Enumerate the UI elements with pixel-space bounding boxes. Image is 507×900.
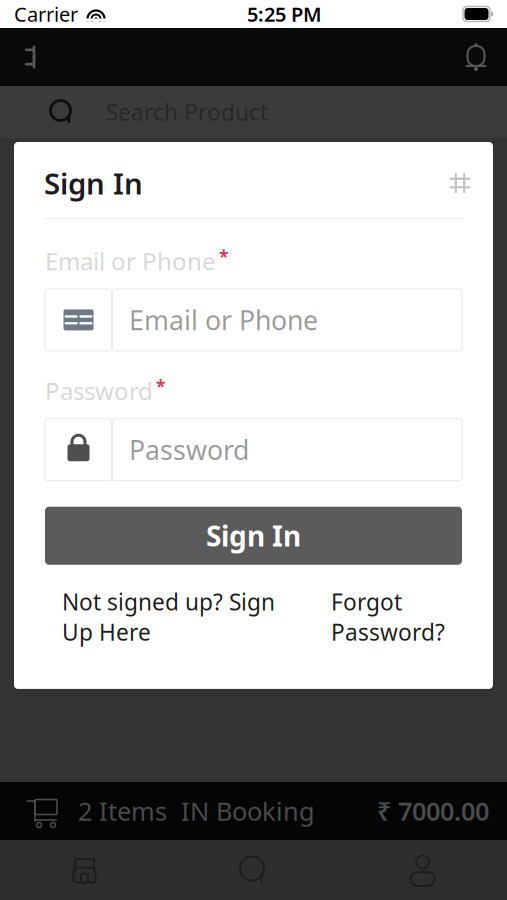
staticText: Carrier <box>14 1 78 27</box>
button[interactable]: Close <box>437 160 483 206</box>
staticText: Maximum 5 Hour Service comes with a menu… <box>130 325 388 410</box>
staticText: 2 Items IN Booking <box>78 794 315 828</box>
staticText: Password <box>45 375 153 407</box>
staticText: Meduse Krab <box>130 284 295 318</box>
staticText: Password <box>129 432 249 467</box>
staticText: ₹ 7000.00 <box>377 794 489 828</box>
staticText: * <box>219 245 228 268</box>
staticText: Forgot Password? <box>331 587 445 647</box>
staticText: Email or Phone <box>129 302 318 338</box>
staticText: 5:25 PM <box>247 1 322 27</box>
button[interactable]: Notifications <box>449 28 503 86</box>
staticText: * <box>156 375 165 398</box>
staticText: Read More <box>130 417 241 445</box>
button[interactable]: Back <box>4 28 58 86</box>
staticText: ₹3500.00 <box>130 194 242 229</box>
button[interactable]: Forgot Password? <box>331 587 445 647</box>
staticText: Email or Phone <box>45 245 216 277</box>
staticText: Sign In <box>206 517 301 554</box>
button[interactable]: Not signed up? Sign Up Here <box>62 587 275 647</box>
staticText: Sign In <box>44 163 143 202</box>
staticText: Not signed up? Sign Up Here <box>62 587 275 647</box>
staticText: Search Product <box>106 97 268 127</box>
button[interactable]: Sign In <box>45 507 462 565</box>
